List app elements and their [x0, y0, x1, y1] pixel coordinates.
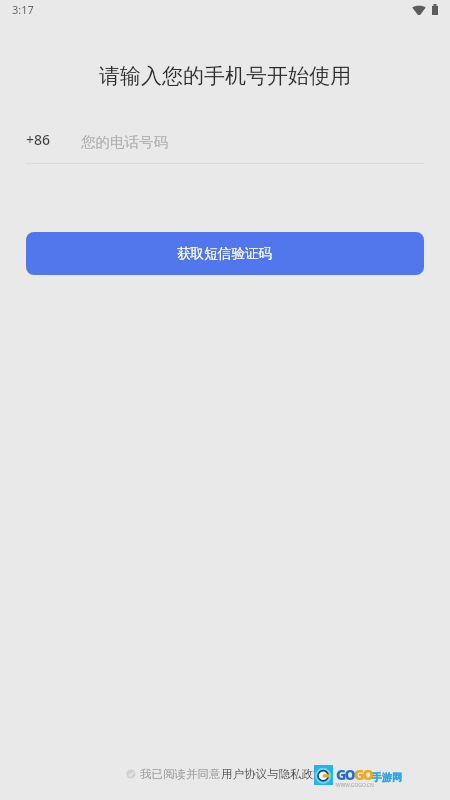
staticText: +86 [26, 130, 51, 149]
staticText: 请输入您的手机号开始使用 [0, 63, 450, 89]
staticText: 我已阅读并同意 [140, 767, 221, 781]
button[interactable]: +86 [26, 122, 424, 162]
staticText: 获取短信验证码 [177, 245, 273, 262]
staticText: GO [354, 765, 372, 784]
staticText: WWW.GOGO.CN [336, 782, 374, 789]
other: Wi-Fi signal [412, 5, 426, 15]
staticText: 3:17 [12, 2, 34, 17]
other: Battery [432, 4, 438, 15]
staticText: GO [336, 765, 354, 784]
button[interactable]: 获取短信验证码 [26, 232, 424, 275]
staticText: 手游网 [372, 771, 402, 784]
staticText: 用户协议与隐私政策 [221, 767, 325, 781]
staticText: 您的电话号码 [81, 133, 168, 151]
button[interactable]: 我已阅读并同意 [126, 767, 325, 781]
